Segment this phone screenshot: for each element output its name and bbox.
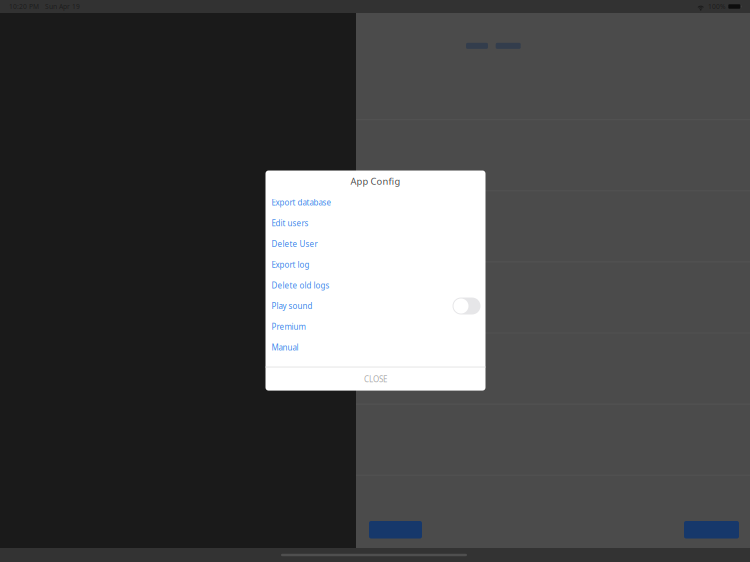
button[interactable]: Play sound [265,296,485,316]
staticText: 100% [708,2,726,11]
button[interactable]: Manual [265,337,485,358]
button[interactable]: CLOSE [265,367,485,391]
button[interactable]: Export database [265,192,485,213]
button[interactable]: Edit users [265,213,485,233]
staticText: Delete old logs [271,280,329,291]
staticText: Delete User [271,239,317,249]
staticText: Premium [271,321,305,332]
button[interactable]: Premium [265,316,485,337]
staticText: CLOSE [364,374,387,384]
staticText: Play sound [271,301,312,311]
staticText: Manual [271,342,298,353]
staticText: 10:20 PM [9,2,39,11]
staticText: Export database [271,197,331,208]
staticText: Edit users [271,218,308,228]
staticText: App Config [350,175,400,187]
button[interactable]: Export log [265,254,485,275]
button[interactable]: Delete old logs [265,275,485,296]
button[interactable]: Delete User [265,233,485,254]
staticText: Sun Apr 19 [45,2,80,11]
staticText: Export log [271,259,309,270]
